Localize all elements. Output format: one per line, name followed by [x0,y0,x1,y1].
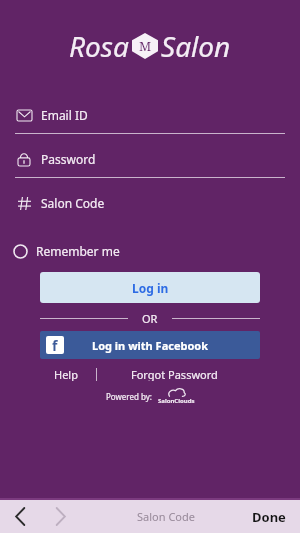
staticText: Log in with Facebook [92,338,209,353]
staticText: Salon [161,27,231,65]
staticText: M [139,37,152,55]
staticText: Rosa [69,27,129,65]
staticText: Password [41,151,96,167]
button[interactable]: f [40,331,260,359]
button[interactable]: Next field [40,500,80,533]
button[interactable]: Password [0,141,300,178]
staticText: f [52,336,58,354]
staticText: Powered by: [106,391,152,402]
button[interactable]: Log in [40,272,260,303]
staticText: Remember me [36,243,120,259]
button[interactable]: Done [252,508,286,526]
staticText: Help [54,367,78,381]
staticText: Log in [132,280,169,296]
button[interactable]: Email ID [0,97,300,134]
button[interactable]: Salon Code [0,185,300,221]
staticText: OR [142,311,158,325]
staticText: Forgot Password [131,367,218,381]
button[interactable]: Help [48,365,84,383]
staticText: Email ID [41,107,88,123]
staticText: Done [252,508,286,526]
staticText: Salon Code [80,509,252,524]
button[interactable]: Forgot Password [125,365,224,383]
staticText: SalonClouds [158,397,195,405]
button[interactable]: Remember me [13,239,300,263]
staticText: Salon Code [41,195,105,211]
button[interactable]: Previous field [0,500,40,533]
